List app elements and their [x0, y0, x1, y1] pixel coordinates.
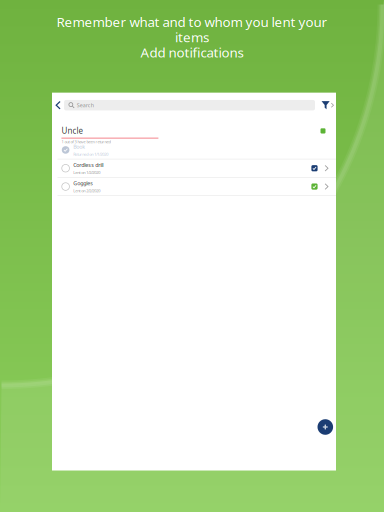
- button[interactable]: Add item: [313, 415, 337, 439]
- staticText: Lent on 2/2/2020: [73, 188, 100, 193]
- button[interactable]: Search: [64, 100, 315, 110]
- staticText: Remember what and to whom you lent your: [56, 13, 327, 31]
- staticText: Search: [77, 102, 94, 109]
- staticText: Cordless drill: [73, 161, 103, 169]
- button[interactable]: Goggles: [57, 178, 336, 195]
- button[interactable]: Cordless drill: [57, 159, 336, 177]
- button[interactable]: Back: [52, 97, 64, 113]
- staticText: Add notifications: [140, 43, 243, 61]
- staticText: Returned on 1/1/2020: [73, 151, 108, 157]
- staticText: Lent on 1/2/2020: [73, 170, 100, 175]
- button[interactable]: Book: [57, 141, 336, 159]
- staticText: 1 out of 3 have been returned: [61, 139, 110, 144]
- staticText: Book: [73, 143, 85, 150]
- staticText: items: [175, 28, 209, 46]
- staticText: Goggles: [73, 180, 93, 187]
- staticText: Uncle: [61, 125, 83, 136]
- button[interactable]: Filter: [315, 97, 336, 113]
- button[interactable]: Contact: [314, 122, 331, 139]
